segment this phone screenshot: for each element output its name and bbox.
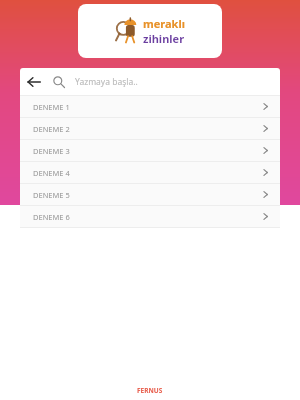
staticText: FERNUS	[137, 386, 163, 395]
button[interactable]: DENEME 2	[20, 118, 280, 139]
button[interactable]: DENEME 1	[20, 96, 280, 117]
button[interactable]: Meraklı Zihinler logo	[78, 4, 222, 58]
button[interactable]: DENEME 4	[20, 162, 280, 183]
staticText: DENEME 1	[33, 102, 70, 112]
staticText: DENEME 5	[33, 190, 70, 200]
staticText: DENEME 2	[33, 124, 70, 134]
button[interactable]: DENEME 3	[20, 140, 280, 161]
button[interactable]: DENEME 5	[20, 184, 280, 205]
staticText: Yazmaya başla..	[75, 76, 138, 88]
staticText: meraklı	[143, 16, 185, 31]
button[interactable]: Search	[47, 70, 71, 94]
staticText: zihinler	[143, 31, 185, 46]
button[interactable]: Back	[20, 68, 47, 95]
staticText: DENEME 3	[33, 146, 70, 156]
button[interactable]: Yazmaya başla..	[75, 68, 280, 95]
button[interactable]: DENEME 6	[20, 206, 280, 227]
staticText: DENEME 4	[33, 168, 70, 178]
staticText: DENEME 6	[33, 212, 70, 222]
